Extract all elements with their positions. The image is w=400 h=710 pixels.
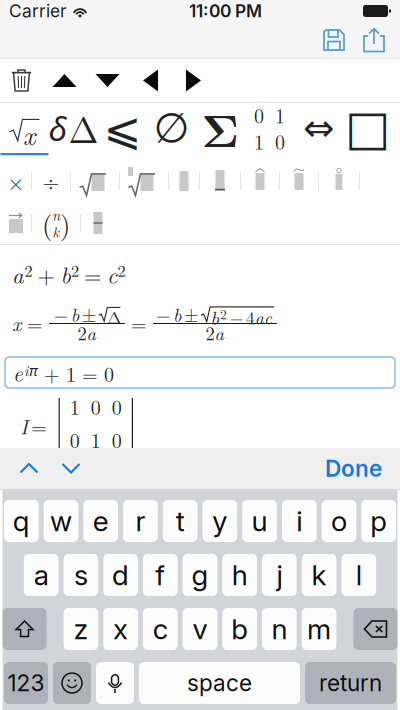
staticText: 0 bbox=[112, 392, 122, 420]
button[interactable]: return bbox=[305, 662, 396, 704]
staticText: x bbox=[12, 309, 21, 337]
button[interactable]: × bbox=[1, 163, 31, 199]
button[interactable]: Σ bbox=[196, 103, 245, 160]
button[interactable]: Delete bbox=[353, 608, 397, 650]
button[interactable]: h bbox=[222, 554, 257, 596]
staticText: 1 bbox=[66, 359, 76, 388]
staticText: 11:00 PM bbox=[189, 0, 262, 21]
button[interactable]: I bbox=[13, 398, 133, 448]
button[interactable]: Shift bbox=[3, 608, 47, 650]
staticText: 2 bbox=[77, 319, 86, 346]
button[interactable]: i bbox=[282, 500, 317, 542]
button[interactable]: x bbox=[0, 103, 49, 160]
button[interactable]: δ bbox=[49, 103, 98, 160]
button[interactable] bbox=[319, 163, 359, 199]
staticText: j bbox=[276, 558, 282, 592]
button[interactable]: Next field bbox=[50, 452, 92, 484]
staticText: e bbox=[93, 504, 109, 538]
button[interactable]: ⩽ bbox=[98, 103, 147, 160]
button[interactable]: c bbox=[143, 608, 178, 650]
button[interactable]: g bbox=[183, 554, 217, 596]
button[interactable]: w bbox=[44, 500, 78, 542]
button[interactable] bbox=[120, 163, 168, 199]
button[interactable]: l bbox=[341, 554, 376, 596]
staticText: m bbox=[307, 612, 331, 646]
button[interactable]: v bbox=[183, 608, 217, 650]
button[interactable] bbox=[81, 205, 115, 241]
button[interactable]: Share bbox=[354, 23, 394, 57]
staticText: 4 bbox=[246, 305, 255, 329]
button[interactable]: x bbox=[103, 608, 138, 650]
button[interactable] bbox=[1, 205, 31, 241]
staticText: b bbox=[173, 301, 182, 327]
staticText: a bbox=[12, 258, 24, 290]
button[interactable]: ⇔ bbox=[294, 103, 343, 160]
button[interactable]: b bbox=[222, 608, 257, 650]
button[interactable]: ÷ bbox=[32, 163, 70, 199]
staticText: b bbox=[231, 612, 248, 646]
button[interactable]: Dictation bbox=[96, 662, 134, 704]
button[interactable] bbox=[200, 163, 240, 199]
button[interactable]: y bbox=[202, 500, 237, 542]
button[interactable]: space bbox=[139, 662, 300, 704]
staticText: i bbox=[24, 360, 29, 381]
staticText: 1 bbox=[91, 425, 101, 454]
button[interactable]: Move right bbox=[172, 59, 215, 102]
button[interactable]: ∅ bbox=[147, 103, 196, 160]
button[interactable]: 0 bbox=[245, 103, 294, 160]
button[interactable]: x bbox=[12, 303, 272, 343]
button[interactable]: j bbox=[262, 554, 297, 596]
staticText: u bbox=[252, 504, 268, 538]
staticText: ± bbox=[82, 301, 97, 327]
button[interactable]: e bbox=[5, 357, 395, 388]
staticText: h bbox=[232, 558, 248, 592]
button[interactable]: q bbox=[4, 500, 39, 542]
staticText: + bbox=[44, 359, 60, 388]
staticText: Done bbox=[325, 455, 382, 482]
button[interactable]: a bbox=[24, 554, 59, 596]
button[interactable]: □ bbox=[343, 103, 392, 160]
button[interactable]: s bbox=[64, 554, 98, 596]
button[interactable]: ( bbox=[32, 205, 80, 241]
staticText: n bbox=[52, 204, 60, 225]
button[interactable]: k bbox=[302, 554, 336, 596]
button[interactable]: t bbox=[163, 500, 197, 542]
button[interactable]: z bbox=[64, 608, 98, 650]
staticText: b bbox=[71, 301, 80, 327]
button[interactable]: m bbox=[302, 608, 336, 650]
button[interactable]: d bbox=[103, 554, 138, 596]
button[interactable]: u bbox=[242, 500, 277, 542]
button[interactable]: Previous field bbox=[8, 452, 50, 484]
button[interactable]: o bbox=[322, 500, 356, 542]
button[interactable] bbox=[71, 163, 119, 199]
staticText: a bbox=[214, 319, 224, 346]
button[interactable] bbox=[280, 163, 318, 199]
button[interactable]: p bbox=[361, 500, 396, 542]
staticText: Σ bbox=[201, 96, 239, 160]
staticText: Δ bbox=[68, 102, 98, 153]
button[interactable]: Delete bbox=[0, 59, 43, 102]
button[interactable]: Move left bbox=[129, 59, 172, 102]
button[interactable]: e bbox=[83, 500, 118, 542]
button[interactable]: Save bbox=[314, 23, 354, 57]
button[interactable]: Move down bbox=[86, 59, 129, 102]
staticText: δ bbox=[48, 105, 66, 151]
staticText: ∅ bbox=[153, 104, 189, 152]
button[interactable]: a bbox=[12, 261, 172, 287]
button[interactable]: 123 bbox=[4, 662, 48, 704]
staticText: d bbox=[112, 558, 129, 592]
button[interactable] bbox=[169, 163, 199, 199]
button[interactable]: Done bbox=[315, 452, 392, 484]
button[interactable]: Move up bbox=[43, 59, 86, 102]
staticText: 0 bbox=[91, 392, 101, 420]
staticText: = bbox=[84, 258, 102, 290]
button[interactable]: Emoji bbox=[53, 662, 91, 704]
staticText: Δ bbox=[107, 304, 121, 329]
button[interactable]: r bbox=[123, 500, 158, 542]
button[interactable]: n bbox=[262, 608, 297, 650]
staticText: 2 bbox=[71, 258, 79, 281]
button[interactable]: f bbox=[143, 554, 178, 596]
button[interactable] bbox=[241, 163, 279, 199]
staticText: 1 bbox=[275, 101, 285, 129]
staticText: ⩽ bbox=[103, 103, 141, 155]
